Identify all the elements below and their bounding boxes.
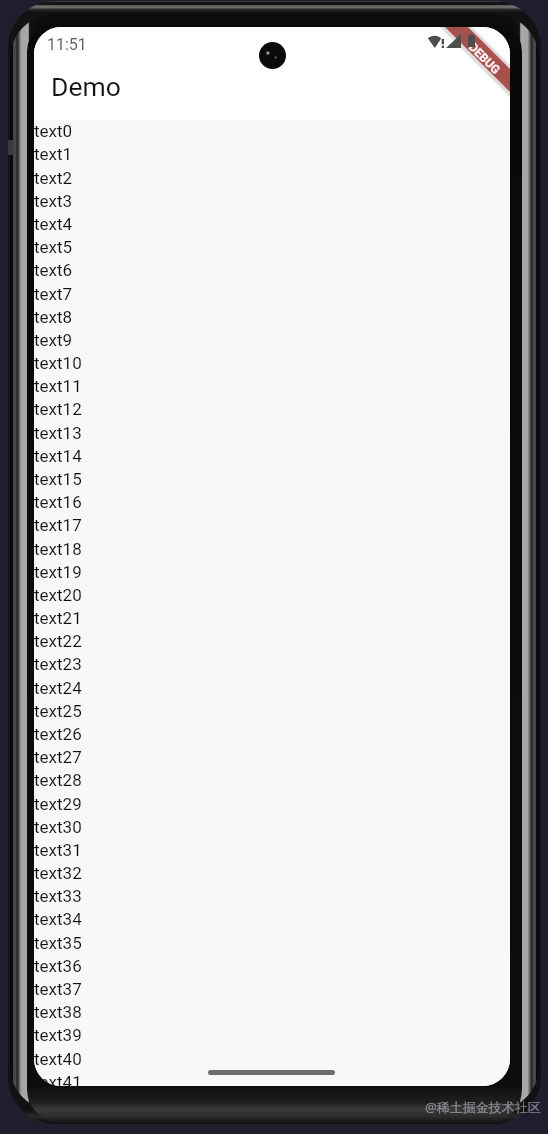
staticText: @稀土掘金技术社区 bbox=[425, 1098, 541, 1116]
button[interactable]: text10 bbox=[34, 351, 510, 374]
staticText: 11:51 bbox=[47, 35, 87, 54]
staticText: text35 bbox=[34, 933, 82, 953]
button[interactable]: text2 bbox=[34, 166, 510, 189]
staticText: text5 bbox=[34, 237, 73, 257]
button[interactable]: text41 bbox=[34, 1070, 510, 1086]
staticText: text7 bbox=[34, 284, 73, 304]
staticText: text10 bbox=[34, 353, 82, 373]
staticText: text19 bbox=[34, 562, 82, 582]
staticText: text36 bbox=[34, 956, 82, 976]
staticText: text38 bbox=[34, 1002, 82, 1022]
staticText: text23 bbox=[34, 654, 82, 674]
button[interactable]: text22 bbox=[34, 629, 510, 652]
staticText: text34 bbox=[34, 909, 82, 929]
button[interactable]: text16 bbox=[34, 490, 510, 513]
other: Front camera bbox=[259, 42, 286, 69]
staticText: text13 bbox=[34, 423, 82, 443]
staticText: text9 bbox=[34, 330, 73, 350]
button[interactable]: text3 bbox=[34, 189, 510, 212]
staticText: text31 bbox=[34, 840, 82, 860]
staticText: text20 bbox=[34, 585, 82, 605]
staticText: text8 bbox=[34, 307, 73, 327]
button[interactable]: text5 bbox=[34, 235, 510, 258]
staticText: text32 bbox=[34, 863, 82, 883]
staticText: text25 bbox=[34, 701, 82, 721]
staticText: text26 bbox=[34, 724, 82, 744]
button[interactable]: text21 bbox=[34, 606, 510, 629]
button[interactable]: text24 bbox=[34, 676, 510, 699]
staticText: text0 bbox=[34, 121, 73, 141]
button[interactable]: text1 bbox=[34, 142, 510, 165]
button[interactable]: text12 bbox=[34, 397, 510, 420]
button[interactable]: text7 bbox=[34, 282, 510, 305]
button[interactable]: text9 bbox=[34, 328, 510, 351]
button[interactable]: text25 bbox=[34, 699, 510, 722]
button[interactable]: text14 bbox=[34, 444, 510, 467]
staticText: text22 bbox=[34, 631, 82, 651]
button[interactable]: text37 bbox=[34, 977, 510, 1000]
staticText: text29 bbox=[34, 794, 82, 814]
button[interactable]: text34 bbox=[34, 907, 510, 930]
button[interactable]: text30 bbox=[34, 815, 510, 838]
staticText: text4 bbox=[34, 214, 73, 234]
button[interactable]: text31 bbox=[34, 838, 510, 861]
staticText: text28 bbox=[34, 770, 82, 790]
button[interactable]: text26 bbox=[34, 722, 510, 745]
staticText: text12 bbox=[34, 399, 82, 419]
staticText: text17 bbox=[34, 515, 82, 535]
button[interactable]: text40 bbox=[34, 1047, 510, 1070]
staticText: text37 bbox=[34, 979, 82, 999]
button[interactable]: text23 bbox=[34, 652, 510, 675]
button[interactable]: text27 bbox=[34, 745, 510, 768]
staticText: Demo bbox=[51, 71, 121, 102]
staticText: text30 bbox=[34, 817, 82, 837]
button[interactable]: text32 bbox=[34, 861, 510, 884]
button[interactable]: text19 bbox=[34, 560, 510, 583]
staticText: text11 bbox=[34, 376, 82, 396]
staticText: text3 bbox=[34, 191, 73, 211]
staticText: text21 bbox=[34, 608, 82, 628]
button[interactable]: text13 bbox=[34, 421, 510, 444]
staticText: text41 bbox=[34, 1072, 82, 1086]
button[interactable]: text8 bbox=[34, 305, 510, 328]
button[interactable]: text39 bbox=[34, 1023, 510, 1046]
staticText: text18 bbox=[34, 539, 82, 559]
button[interactable]: text11 bbox=[34, 374, 510, 397]
staticText: text15 bbox=[34, 469, 82, 489]
button[interactable]: text28 bbox=[34, 768, 510, 791]
button[interactable]: text35 bbox=[34, 931, 510, 954]
button[interactable]: text4 bbox=[34, 212, 510, 235]
staticText: text16 bbox=[34, 492, 82, 512]
staticText: text33 bbox=[34, 886, 82, 906]
button[interactable]: text6 bbox=[34, 258, 510, 281]
staticText: text27 bbox=[34, 747, 82, 767]
button[interactable]: text38 bbox=[34, 1000, 510, 1023]
button[interactable]: text29 bbox=[34, 792, 510, 815]
staticText: text14 bbox=[34, 446, 82, 466]
button[interactable]: text15 bbox=[34, 467, 510, 490]
staticText: text2 bbox=[34, 168, 73, 188]
staticText: text6 bbox=[34, 260, 73, 280]
button[interactable]: text17 bbox=[34, 513, 510, 536]
button[interactable]: text0 bbox=[34, 119, 510, 142]
staticText: text40 bbox=[34, 1049, 82, 1069]
staticText: text1 bbox=[34, 144, 73, 164]
button[interactable]: text18 bbox=[34, 537, 510, 560]
staticText: text39 bbox=[34, 1025, 82, 1045]
button[interactable]: text36 bbox=[34, 954, 510, 977]
button[interactable]: text20 bbox=[34, 583, 510, 606]
staticText: text24 bbox=[34, 678, 82, 698]
button[interactable]: text33 bbox=[34, 884, 510, 907]
staticText: DEBUG bbox=[466, 40, 503, 77]
